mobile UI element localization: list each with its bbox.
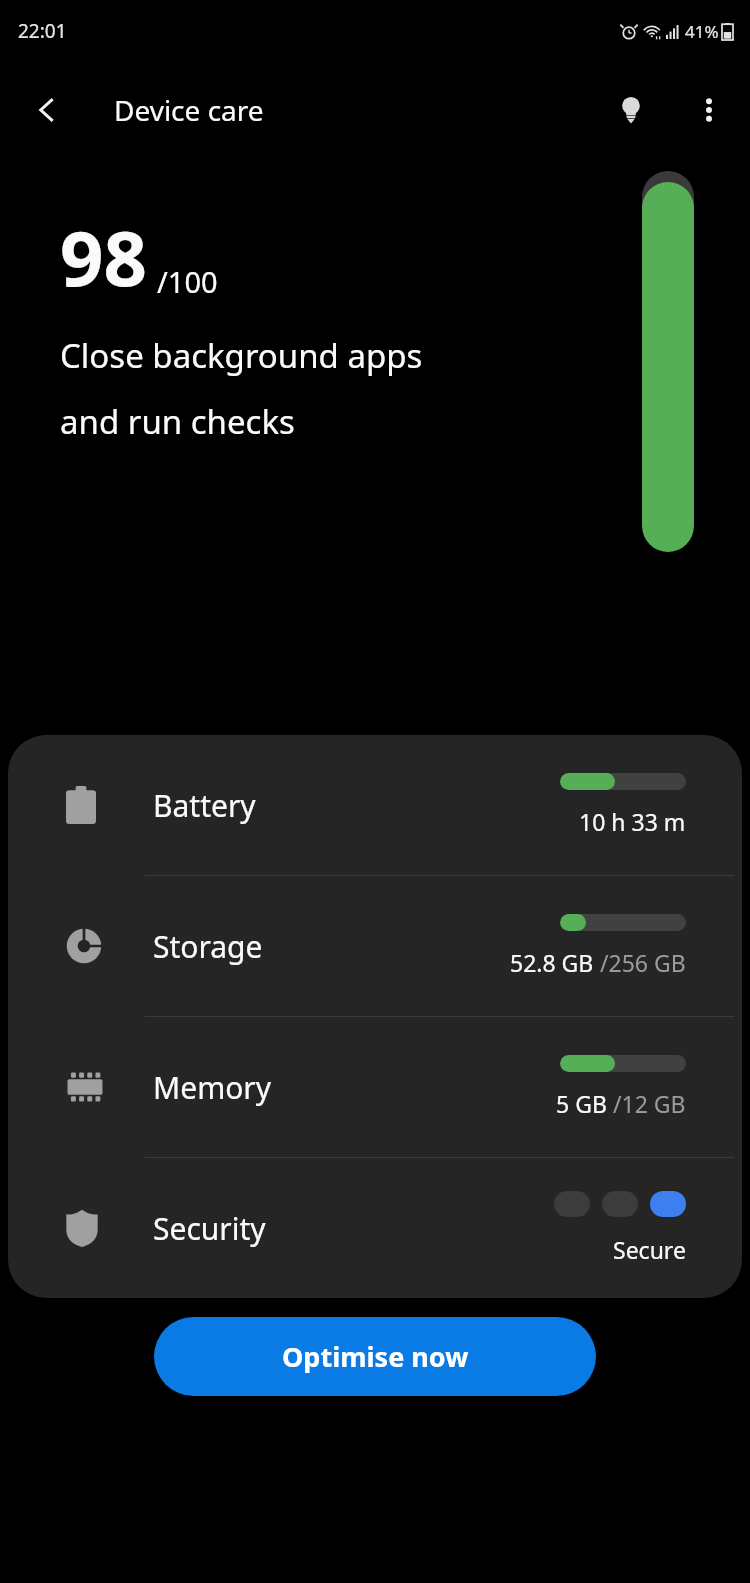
staticText: 22:01 [18,18,67,44]
staticText: Memory [153,1067,556,1108]
staticText: and run checks [60,399,295,444]
staticText: /100 [157,262,218,301]
staticText: 41% [685,20,719,43]
staticText: Close background apps [60,333,423,378]
staticText: Secure [613,1234,686,1265]
other: Storage [66,928,102,964]
staticText: Storage [153,926,510,967]
button[interactable]: Optimise now [154,1317,596,1396]
staticText: Device care [114,91,264,129]
button[interactable]: Memory [8,1017,742,1157]
staticText: /256 GB [600,947,686,978]
staticText: 52.8 GB [510,947,600,978]
button[interactable]: Battery [8,735,742,875]
other: Memory [66,1070,104,1104]
other: Security [66,1209,98,1247]
staticText: Security [153,1208,554,1249]
button[interactable]: Tips [602,81,660,139]
staticText: 5 GB [556,1088,613,1119]
button[interactable]: More options [684,85,734,135]
button[interactable]: Storage [8,876,742,1016]
button[interactable]: Back [22,84,74,136]
staticText: 10 h 33 m [579,806,686,837]
button[interactable]: Security [8,1158,742,1298]
staticText: Battery [153,785,560,826]
staticText: /12 GB [613,1088,686,1119]
staticText: 98 [60,205,147,309]
staticText: Optimise now [282,1338,469,1375]
other: Battery [66,786,96,824]
